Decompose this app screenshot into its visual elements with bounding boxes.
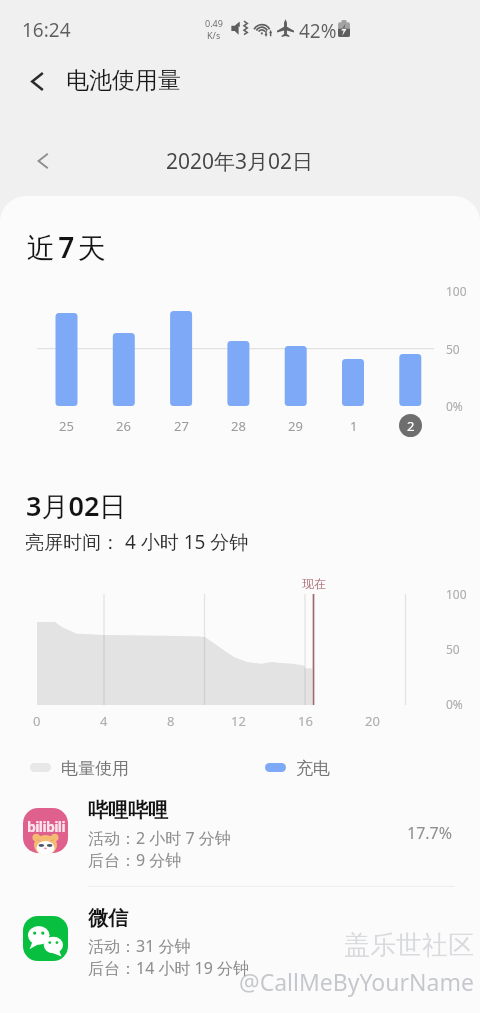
staticText: 100 — [446, 283, 467, 299]
button[interactable]: Previous day — [26, 144, 60, 178]
staticText: 50 — [446, 341, 460, 357]
button[interactable]: 微信 — [0, 903, 480, 1005]
staticText: @CallMeByYourName — [239, 966, 474, 997]
staticText: 活动：2 小时 7 分钟 — [88, 827, 231, 849]
staticText: bilibili — [27, 817, 65, 836]
staticText: 100 — [446, 586, 467, 602]
staticText: 8 — [167, 712, 175, 730]
staticText: 后台：14 小时 19 分钟 — [88, 957, 250, 979]
staticText: 电池使用量 — [66, 66, 181, 95]
button[interactable]: 28 — [227, 414, 250, 437]
staticText: 25 — [59, 417, 74, 435]
staticText: 哔哩哔哩 — [88, 798, 168, 823]
button[interactable]: 26 — [112, 414, 135, 437]
button[interactable]: 2 — [399, 414, 422, 437]
staticText: 26 — [116, 417, 131, 435]
staticText: K/s — [207, 29, 221, 41]
staticText: 亮屏时间： 4 小时 15 分钟 — [25, 529, 249, 555]
staticText: 1 — [350, 417, 358, 435]
staticText: 28 — [231, 417, 246, 435]
staticText: 16:24 — [22, 17, 71, 43]
staticText: 27 — [174, 417, 189, 435]
staticText: 近7天 — [27, 228, 109, 266]
staticText: 微信 — [88, 906, 128, 931]
staticText: 3月02日 — [26, 487, 127, 524]
button[interactable]: 27 — [170, 414, 193, 437]
button[interactable]: Back — [18, 62, 56, 100]
staticText: 2020年3月02日 — [166, 147, 314, 176]
staticText: 50 — [446, 641, 460, 657]
staticText: 42% — [299, 18, 337, 44]
button[interactable]: 1 — [342, 414, 365, 437]
staticText: 29 — [288, 417, 303, 435]
staticText: 充电 — [296, 758, 330, 779]
staticText: 4 — [100, 712, 108, 730]
staticText: 0% — [446, 398, 463, 414]
staticText: 0% — [446, 696, 463, 712]
staticText: 2 — [407, 417, 415, 435]
staticText: 12 — [231, 712, 246, 730]
staticText: 16 — [298, 712, 313, 730]
button[interactable]: 29 — [284, 414, 307, 437]
staticText: 盖乐世社区 — [344, 929, 474, 962]
staticText: 17.7% — [407, 822, 453, 844]
staticText: 后台：9 分钟 — [88, 849, 182, 871]
staticText: 电量使用 — [61, 758, 129, 779]
staticText: 20 — [365, 712, 380, 730]
staticText: 0.49 — [205, 17, 223, 29]
staticText: 0 — [33, 712, 41, 730]
staticText: 活动：31 分钟 — [88, 935, 191, 957]
staticText: 现在 — [302, 576, 326, 591]
button[interactable]: bilibili — [0, 795, 480, 897]
button[interactable]: 25 — [55, 414, 78, 437]
